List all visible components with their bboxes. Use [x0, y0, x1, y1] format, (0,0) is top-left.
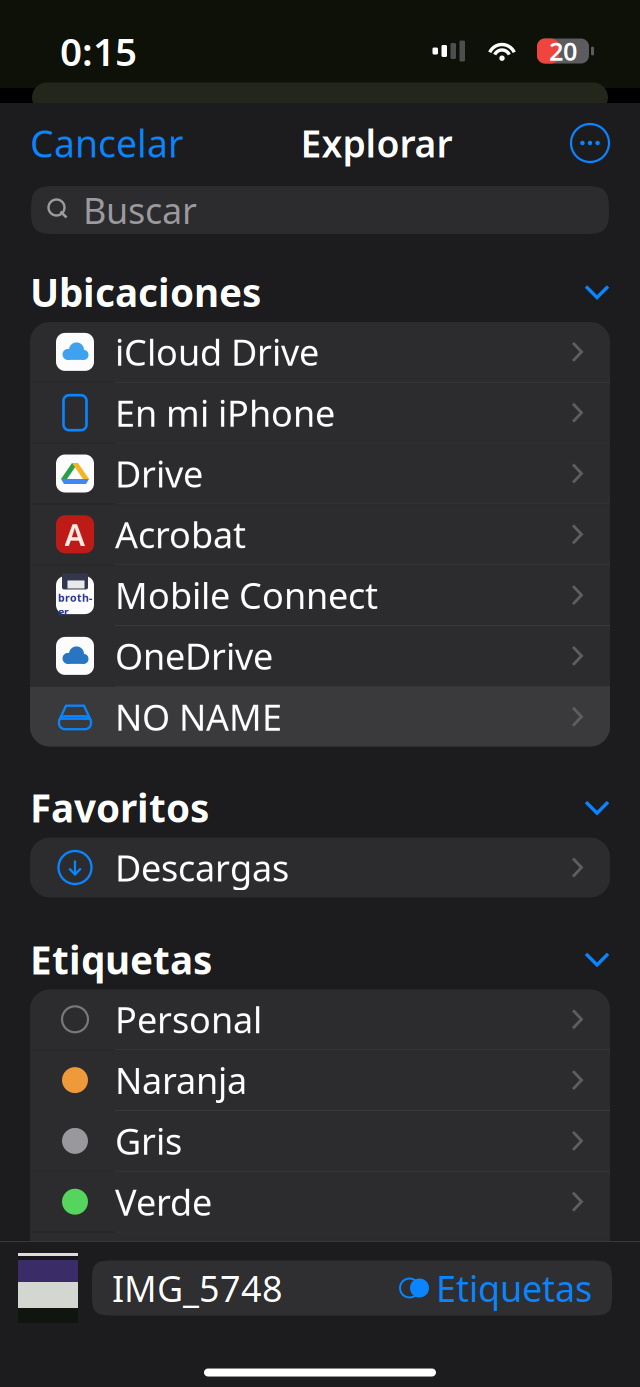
staticText: Ubicaciones [30, 266, 261, 318]
button[interactable]: Más opciones [558, 111, 640, 175]
staticText: Drive [115, 450, 203, 497]
staticText: Explorar [300, 118, 452, 168]
button[interactable]: NO NAME [30, 687, 610, 747]
staticText: Naranja [115, 1056, 247, 1104]
staticText: Acrobat [115, 510, 246, 558]
staticText: 0:15 [60, 25, 137, 77]
button[interactable]: Descargas [30, 838, 610, 897]
staticText: Gris [115, 1117, 182, 1165]
staticText: 20 [549, 34, 577, 68]
button[interactable]: Contraer Ubicaciones [584, 281, 610, 302]
staticText: Descargas [115, 844, 289, 891]
button[interactable]: Contraer Favoritos [584, 797, 610, 818]
button[interactable]: brother [30, 565, 610, 625]
staticText: Etiquetas [436, 1264, 592, 1312]
staticText: Favoritos [30, 782, 209, 833]
staticText: Rojo [115, 1239, 190, 1286]
button[interactable]: Cancelar [0, 111, 195, 175]
button[interactable]: Verde [30, 1172, 610, 1232]
button[interactable]: OneDrive [30, 626, 610, 686]
button[interactable]: Drive [30, 444, 610, 503]
staticText: En mi iPhone [115, 389, 335, 437]
staticText: brother [58, 590, 92, 619]
button[interactable]: Rojo [30, 1233, 610, 1292]
staticText: OneDrive [115, 632, 273, 680]
staticText: IMG_5748 [112, 1264, 283, 1312]
button[interactable]: Naranja [30, 1050, 610, 1110]
button[interactable]: A [30, 504, 610, 564]
staticText: Cancelar [30, 118, 183, 168]
button[interactable]: IMG_5748 [92, 1260, 612, 1315]
staticText: Mobile Connect [115, 571, 378, 619]
staticText: iCloud Drive [115, 328, 319, 376]
staticText: A [64, 514, 85, 555]
staticText: Personal [115, 995, 262, 1043]
button[interactable]: En mi iPhone [30, 383, 610, 443]
button[interactable]: Gris [30, 1111, 610, 1171]
staticText: Verde [115, 1178, 212, 1226]
button[interactable]: Contraer Etiquetas [584, 949, 610, 970]
staticText: Etiquetas [30, 934, 212, 985]
staticText: NO NAME [115, 693, 282, 741]
staticText: Buscar [83, 186, 197, 234]
button[interactable]: iCloud Drive [30, 322, 610, 382]
button[interactable]: Personal [30, 989, 610, 1049]
